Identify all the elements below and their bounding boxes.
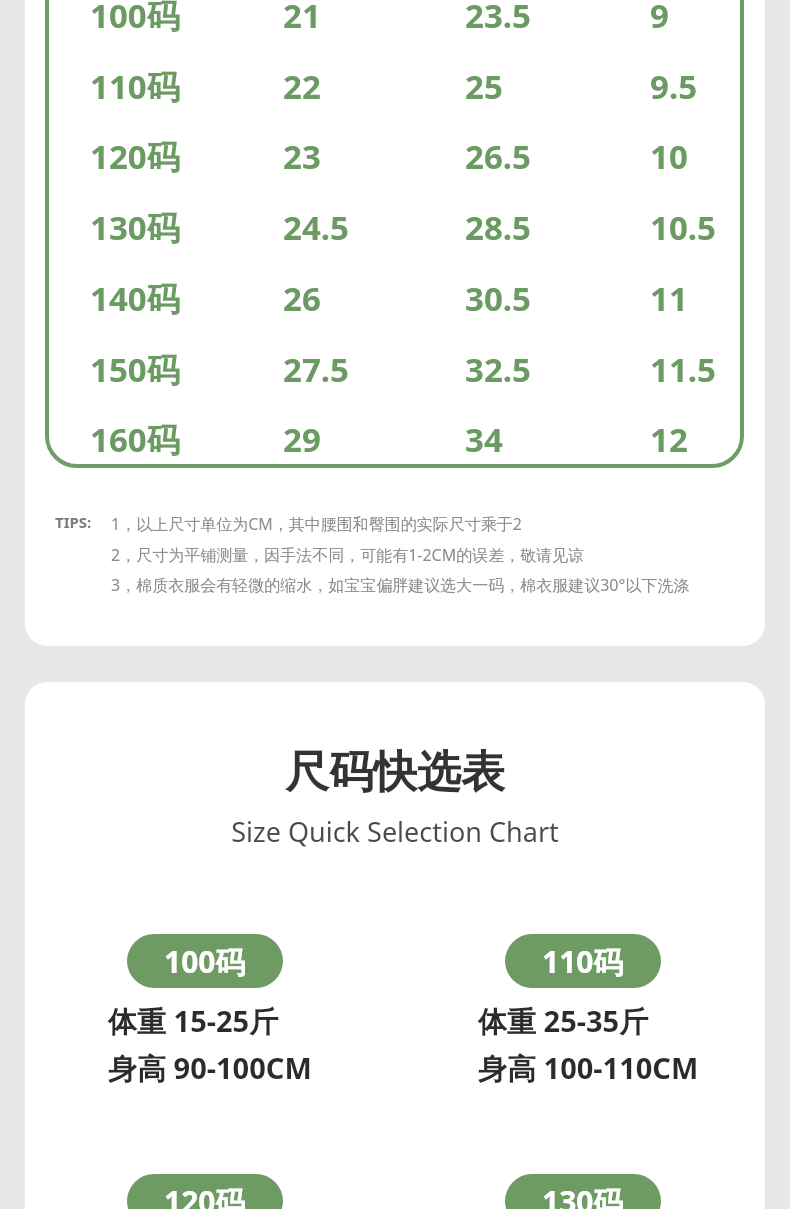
staticText: 29 (283, 417, 321, 462)
staticText: Size Quick Selection Chart (0, 813, 790, 850)
staticText: 28.5 (465, 205, 531, 250)
staticText: 34 (465, 417, 503, 462)
button[interactable]: 25 (465, 64, 503, 109)
staticText: 10.5 (650, 205, 716, 250)
staticText: 9 (650, 0, 669, 38)
button[interactable]: 140码 (90, 276, 180, 321)
button[interactable]: 26.5 (465, 134, 531, 179)
button[interactable]: 9 (650, 0, 669, 38)
staticText: 23.5 (465, 0, 531, 38)
staticText: 24.5 (283, 205, 349, 250)
staticText: 体重 25-35斤 (478, 1001, 649, 1041)
staticText: 27.5 (283, 347, 349, 392)
staticText: 25 (465, 64, 503, 109)
button[interactable]: 120码 (127, 1174, 283, 1209)
button[interactable]: 12 (650, 417, 688, 462)
button[interactable]: 9.5 (650, 64, 698, 109)
button[interactable]: 体重 25-35斤 (478, 1001, 699, 1088)
staticText: 10 (650, 134, 688, 179)
staticText: 21 (283, 0, 321, 38)
staticText: 110码 (90, 64, 180, 109)
button[interactable]: 24.5 (283, 205, 349, 250)
button[interactable]: 120码 (90, 134, 180, 179)
staticText: 130码 (90, 205, 180, 250)
staticText: 130码 (542, 1181, 624, 1209)
button[interactable]: 11 (650, 276, 688, 321)
staticText: 身高 100-110CM (478, 1048, 699, 1088)
button[interactable]: 130码 (505, 1174, 661, 1209)
button[interactable]: 100码 (127, 934, 283, 988)
staticText: 22 (283, 64, 321, 109)
staticText: TIPS: (55, 512, 92, 532)
staticText: 26 (283, 276, 321, 321)
staticText: 3，棉质衣服会有轻微的缩水，如宝宝偏胖建议选大一码，棉衣服建议30°以下洗涤 (111, 574, 690, 596)
staticText: 尺码快选表 (0, 745, 790, 800)
staticText: 32.5 (465, 347, 531, 392)
staticText: 11 (650, 276, 688, 321)
staticText: 11.5 (650, 347, 716, 392)
staticText: 110码 (542, 941, 624, 982)
staticText: 9.5 (650, 64, 698, 109)
staticText: 140码 (90, 276, 180, 321)
button[interactable]: 11.5 (650, 347, 716, 392)
staticText: 身高 90-100CM (108, 1048, 312, 1088)
button[interactable]: 26 (283, 276, 321, 321)
staticText: 26.5 (465, 134, 531, 179)
staticText: 120码 (90, 134, 180, 179)
staticText: 23 (283, 134, 321, 179)
button[interactable]: 130码 (90, 205, 180, 250)
button[interactable]: 110码 (505, 934, 661, 988)
button[interactable]: 10.5 (650, 205, 716, 250)
staticText: 100码 (90, 0, 180, 38)
staticText: 体重 15-25斤 (108, 1001, 279, 1041)
button[interactable]: 30.5 (465, 276, 531, 321)
button[interactable]: 10 (650, 134, 688, 179)
button[interactable]: 22 (283, 64, 321, 109)
staticText: 30.5 (465, 276, 531, 321)
button[interactable]: 体重 15-25斤 (108, 1001, 312, 1088)
staticText: 12 (650, 417, 688, 462)
staticText: 1，以上尺寸单位为CM，其中腰围和臀围的实际尺寸乘于2 (111, 513, 522, 535)
button[interactable]: 29 (283, 417, 321, 462)
button[interactable]: 160码 (90, 417, 180, 462)
button[interactable]: 28.5 (465, 205, 531, 250)
button[interactable]: 110码 (90, 64, 180, 109)
button[interactable]: 21 (283, 0, 321, 38)
staticText: 150码 (90, 347, 180, 392)
button[interactable]: 32.5 (465, 347, 531, 392)
button[interactable]: 23 (283, 134, 321, 179)
button[interactable]: 150码 (90, 347, 180, 392)
button[interactable]: 27.5 (283, 347, 349, 392)
button[interactable]: 23.5 (465, 0, 531, 38)
button[interactable]: 100码 (90, 0, 180, 38)
staticText: 120码 (164, 1181, 246, 1209)
button[interactable]: TIPS: (55, 512, 92, 532)
staticText: 2，尺寸为平铺测量，因手法不同，可能有1-2CM的误差，敬请见谅 (111, 544, 585, 566)
button[interactable]: 34 (465, 417, 503, 462)
staticText: 160码 (90, 417, 180, 462)
staticText: 100码 (164, 941, 246, 982)
